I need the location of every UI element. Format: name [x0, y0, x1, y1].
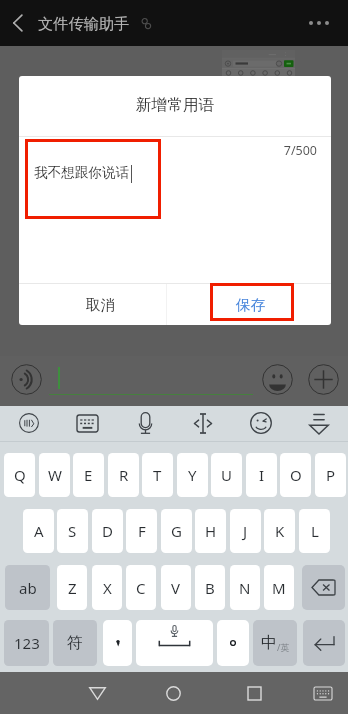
staticText: ab — [19, 578, 37, 598]
button[interactable]: P — [315, 453, 346, 497]
staticText: H — [205, 521, 217, 541]
button[interactable]: A — [23, 509, 54, 553]
button[interactable]: T — [142, 453, 173, 497]
button[interactable]: 123 — [4, 620, 49, 666]
staticText: V — [171, 578, 181, 598]
button[interactable]: J — [230, 509, 261, 553]
button[interactable]: mic — [116, 406, 174, 440]
button[interactable]: X — [92, 565, 122, 610]
staticText: L — [311, 521, 319, 541]
button[interactable]: M — [264, 565, 294, 610]
button[interactable]: Recents — [235, 672, 274, 714]
staticText: E — [84, 465, 93, 485]
button[interactable]: Enter — [303, 620, 345, 666]
button[interactable]: 取消 — [19, 284, 167, 325]
staticText: J — [243, 521, 248, 541]
staticText: B — [205, 578, 215, 598]
button[interactable]: L — [299, 509, 330, 553]
button[interactable]: S — [57, 509, 88, 553]
staticText: O — [290, 465, 302, 485]
button[interactable]: ime — [0, 406, 58, 440]
button[interactable]: U — [211, 453, 242, 497]
staticText: Q — [14, 465, 26, 485]
button[interactable]: N — [230, 565, 260, 610]
button[interactable]: R — [108, 453, 139, 497]
button[interactable]: Hide keyboard — [305, 672, 341, 714]
staticText: 中 — [261, 633, 277, 653]
button[interactable]: Emoji — [262, 364, 293, 395]
button[interactable]: D — [92, 509, 123, 553]
button[interactable]: 保存 — [167, 284, 331, 325]
staticText: 123 — [14, 633, 40, 653]
staticText: Y — [188, 465, 197, 485]
staticText: N — [239, 578, 251, 598]
staticText: R — [119, 465, 129, 485]
button[interactable]: B — [195, 565, 225, 610]
button[interactable]: C — [126, 565, 156, 610]
staticText: Z — [68, 578, 77, 598]
staticText: 符 — [67, 633, 83, 653]
staticText: K — [275, 521, 285, 541]
staticText: T — [153, 465, 162, 485]
staticText: S — [68, 521, 77, 541]
staticText: 新增常用语 — [136, 95, 214, 115]
button[interactable]: cursor — [174, 406, 232, 440]
staticText: F — [138, 521, 146, 541]
button[interactable]: Z — [57, 565, 87, 610]
button[interactable]: O — [280, 453, 311, 497]
button[interactable]: Voice input — [11, 364, 42, 395]
button[interactable]: V — [161, 565, 191, 610]
button[interactable]: hide — [290, 406, 348, 440]
button[interactable]: Space — [136, 620, 213, 666]
staticText: 取消 — [86, 296, 116, 315]
staticText: I — [259, 465, 265, 485]
button[interactable]: emoji — [232, 406, 290, 440]
staticText: 文件传输助手 — [38, 14, 130, 33]
button[interactable]: Y — [177, 453, 208, 497]
staticText: X — [103, 578, 112, 598]
staticText: 保存 — [236, 296, 266, 315]
button[interactable]: 符 — [53, 620, 97, 666]
staticText: A — [34, 521, 44, 541]
button[interactable]: Home — [154, 672, 193, 714]
staticText: G — [171, 521, 182, 541]
button[interactable]: Backspace — [302, 565, 345, 610]
button[interactable]: E — [73, 453, 104, 497]
staticText: U — [221, 465, 232, 485]
button[interactable]: K — [264, 509, 295, 553]
button[interactable]: Back — [78, 672, 117, 714]
staticText: 我不想跟你说话 — [34, 164, 130, 181]
button[interactable]: Comma — [103, 620, 132, 666]
button[interactable]: More functions — [308, 364, 339, 395]
staticText: 7/500 — [19, 142, 317, 159]
staticText: C — [136, 578, 146, 598]
button[interactable]: 中 — [253, 620, 297, 666]
staticText: P — [326, 465, 336, 485]
button[interactable]: ab — [5, 565, 50, 610]
button[interactable]: F — [126, 509, 157, 553]
staticText: D — [102, 521, 113, 541]
button[interactable]: More options — [301, 15, 337, 31]
button[interactable]: kb — [58, 406, 116, 440]
button[interactable]: H — [195, 509, 226, 553]
button[interactable]: Q — [4, 453, 35, 497]
staticText: W — [48, 465, 62, 485]
button[interactable]: I — [246, 453, 277, 497]
button[interactable]: G — [161, 509, 192, 553]
button[interactable]: W — [39, 453, 70, 497]
button[interactable]: Period — [217, 620, 249, 666]
button[interactable]: Back — [4, 8, 34, 38]
staticText: /英 — [277, 641, 290, 653]
staticText: M — [272, 578, 286, 598]
